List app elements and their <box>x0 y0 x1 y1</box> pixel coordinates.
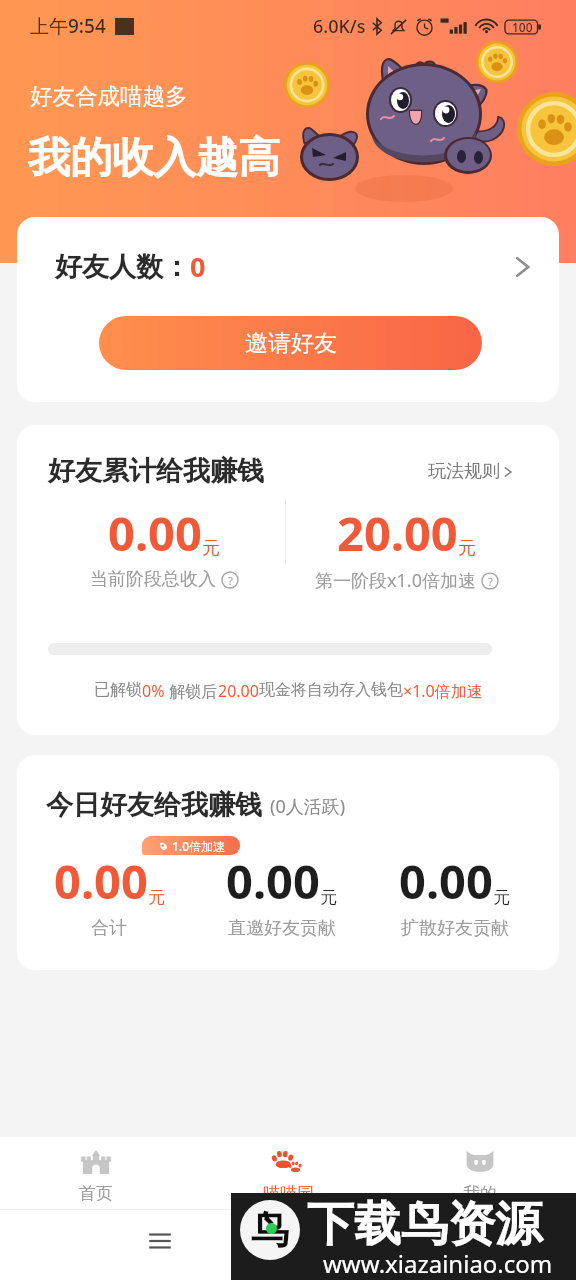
button[interactable]: 菜单 <box>148 1232 172 1250</box>
staticText: 元 <box>493 887 510 908</box>
staticText: 下载鸟资源 <box>307 1195 542 1254</box>
staticText: 现金将自动存入钱包 <box>259 680 403 700</box>
staticText: 第一阶段x1.0倍加速 <box>315 568 476 593</box>
staticText: 元 <box>148 887 165 908</box>
staticText: 已解锁 <box>94 680 142 700</box>
staticText: ×1.0倍加速 <box>403 680 483 702</box>
staticText: 我的收入越高 <box>28 132 280 185</box>
button[interactable]: 首页 <box>0 1137 192 1209</box>
staticText: 0% <box>142 680 165 702</box>
button[interactable]: 邀请好友 <box>99 316 482 370</box>
staticText: 100 <box>512 19 533 35</box>
staticText: 0.00 <box>226 849 320 913</box>
staticText: 邀请好友 <box>245 329 337 358</box>
staticText: 好友合成喵越多 <box>30 82 188 110</box>
staticText: ? <box>228 573 233 588</box>
staticText: 合计 <box>91 917 127 940</box>
staticText: 0.00 <box>399 849 493 913</box>
staticText: 当前阶段总收入 <box>90 568 216 591</box>
staticText: 好友人数： <box>55 250 190 284</box>
button[interactable]: 我的 <box>384 1137 576 1209</box>
staticText: (0人活跃) <box>270 794 346 819</box>
staticText: 元 <box>458 537 476 560</box>
staticText: 首页 <box>79 1183 113 1204</box>
staticText: 直邀好友贡献 <box>228 917 336 940</box>
staticText: 上午9:54 <box>30 13 106 39</box>
staticText: 20.00 <box>218 680 259 702</box>
button[interactable]: 玩法规则 <box>428 460 513 483</box>
button[interactable]: 好友人数： <box>17 217 559 316</box>
staticText: ? <box>488 574 493 589</box>
staticText: 扩散好友贡献 <box>401 917 509 940</box>
staticText: 我的 <box>463 1183 497 1204</box>
staticText: 喵喵园 <box>263 1183 314 1204</box>
button[interactable]: 喵喵园 <box>192 1137 384 1209</box>
staticText: 1.0倍加速 <box>172 838 225 854</box>
other: 查看好友 <box>508 256 530 278</box>
staticText: 元 <box>202 537 220 560</box>
staticText: 0.00 <box>108 501 202 565</box>
staticText: www.xiazainiao.com <box>323 1247 553 1280</box>
staticText: 今日好友给我赚钱 <box>46 788 262 822</box>
staticText: 0 <box>190 248 206 285</box>
staticText: 好友累计给我赚钱 <box>48 454 264 488</box>
staticText: 0.00 <box>54 849 148 913</box>
staticText: 20.00 <box>337 501 458 565</box>
staticText: 玩法规则 <box>428 460 500 483</box>
staticText: 元 <box>320 887 337 908</box>
staticText: 解锁后 <box>165 680 218 702</box>
staticText: 鸟 <box>251 1206 289 1254</box>
staticText: 6.0K/s <box>313 14 366 39</box>
